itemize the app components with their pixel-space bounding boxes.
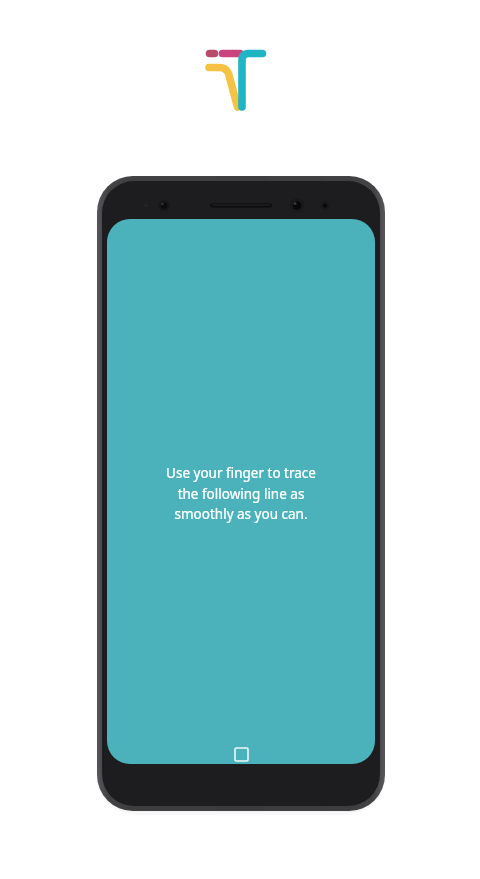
- other: App logo: [204, 42, 278, 114]
- button[interactable]: Recent apps: [226, 739, 256, 769]
- staticText: Use your finger to trace the following l…: [166, 464, 316, 523]
